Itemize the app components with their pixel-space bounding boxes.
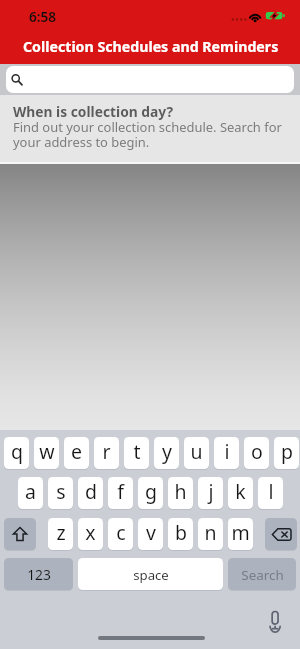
staticText: 6:58 bbox=[29, 7, 57, 26]
staticText: When is collection day? bbox=[13, 102, 174, 121]
button[interactable]: j bbox=[198, 477, 223, 510]
button[interactable]: d bbox=[78, 477, 103, 510]
staticText: c bbox=[116, 519, 126, 546]
staticText: g bbox=[145, 478, 157, 505]
button[interactable]: v bbox=[138, 518, 163, 551]
button[interactable]: Shift bbox=[4, 518, 36, 551]
button[interactable]: q bbox=[4, 437, 29, 470]
staticText: n bbox=[204, 519, 217, 546]
staticText: k bbox=[235, 478, 246, 505]
button[interactable]: l bbox=[258, 477, 283, 510]
button[interactable]: x bbox=[78, 518, 103, 551]
button[interactable]: m bbox=[228, 518, 253, 551]
button[interactable]: t bbox=[124, 437, 149, 470]
staticText: t bbox=[133, 438, 141, 465]
button[interactable]: y bbox=[154, 437, 179, 470]
staticText: v bbox=[146, 519, 156, 546]
staticText: x bbox=[85, 519, 96, 546]
button[interactable]: r bbox=[94, 437, 119, 470]
button[interactable]: Search bbox=[228, 558, 296, 591]
staticText: m bbox=[231, 519, 250, 546]
button[interactable]: s bbox=[48, 477, 73, 510]
staticText: Find out your collection schedule. Searc… bbox=[13, 118, 288, 151]
button[interactable]: o bbox=[244, 437, 269, 470]
staticText: j bbox=[208, 478, 214, 505]
staticText: space bbox=[133, 566, 169, 584]
staticText: 123 bbox=[27, 565, 51, 584]
staticText: r bbox=[102, 438, 111, 465]
staticText: e bbox=[71, 438, 82, 465]
button[interactable]: Dictation bbox=[268, 610, 283, 631]
staticText: l bbox=[268, 478, 274, 505]
staticText: i bbox=[224, 438, 230, 465]
button[interactable]: space bbox=[78, 558, 223, 591]
staticText: f bbox=[117, 478, 124, 505]
button[interactable]: Backspace bbox=[265, 518, 297, 551]
staticText: Search bbox=[241, 566, 284, 584]
button[interactable]: p bbox=[274, 437, 299, 470]
staticText: z bbox=[56, 519, 66, 546]
button[interactable]: e bbox=[64, 437, 89, 470]
staticText: u bbox=[190, 438, 203, 465]
staticText: Collection Schedules and Reminders bbox=[23, 37, 279, 56]
button[interactable]: z bbox=[48, 518, 73, 551]
staticText: a bbox=[25, 478, 36, 505]
button[interactable]: i bbox=[214, 437, 239, 470]
button[interactable]: g bbox=[138, 477, 163, 510]
staticText: y bbox=[162, 438, 172, 465]
staticText: h bbox=[174, 478, 187, 505]
button[interactable]: n bbox=[198, 518, 223, 551]
button[interactable]: Search address bbox=[6, 66, 294, 93]
button[interactable]: w bbox=[34, 437, 59, 470]
staticText: d bbox=[85, 478, 97, 505]
staticText: s bbox=[56, 478, 66, 505]
button[interactable]: a bbox=[18, 477, 43, 510]
staticText: w bbox=[39, 438, 55, 465]
button[interactable]: c bbox=[108, 518, 133, 551]
button[interactable]: k bbox=[228, 477, 253, 510]
staticText: b bbox=[175, 519, 187, 546]
button[interactable]: u bbox=[184, 437, 209, 470]
staticText: o bbox=[251, 438, 263, 465]
button[interactable]: 123 bbox=[4, 558, 73, 591]
button[interactable]: h bbox=[168, 477, 193, 510]
button[interactable]: f bbox=[108, 477, 133, 510]
staticText: q bbox=[11, 438, 23, 465]
button[interactable]: b bbox=[168, 518, 193, 551]
staticText: p bbox=[281, 438, 293, 465]
